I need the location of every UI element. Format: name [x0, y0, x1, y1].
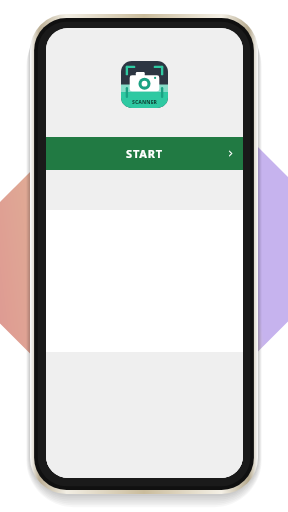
staticText: SCANNER [132, 99, 157, 106]
staticText: START [126, 146, 163, 161]
button[interactable]: START [46, 137, 243, 170]
other: Scanner app icon [121, 61, 168, 108]
